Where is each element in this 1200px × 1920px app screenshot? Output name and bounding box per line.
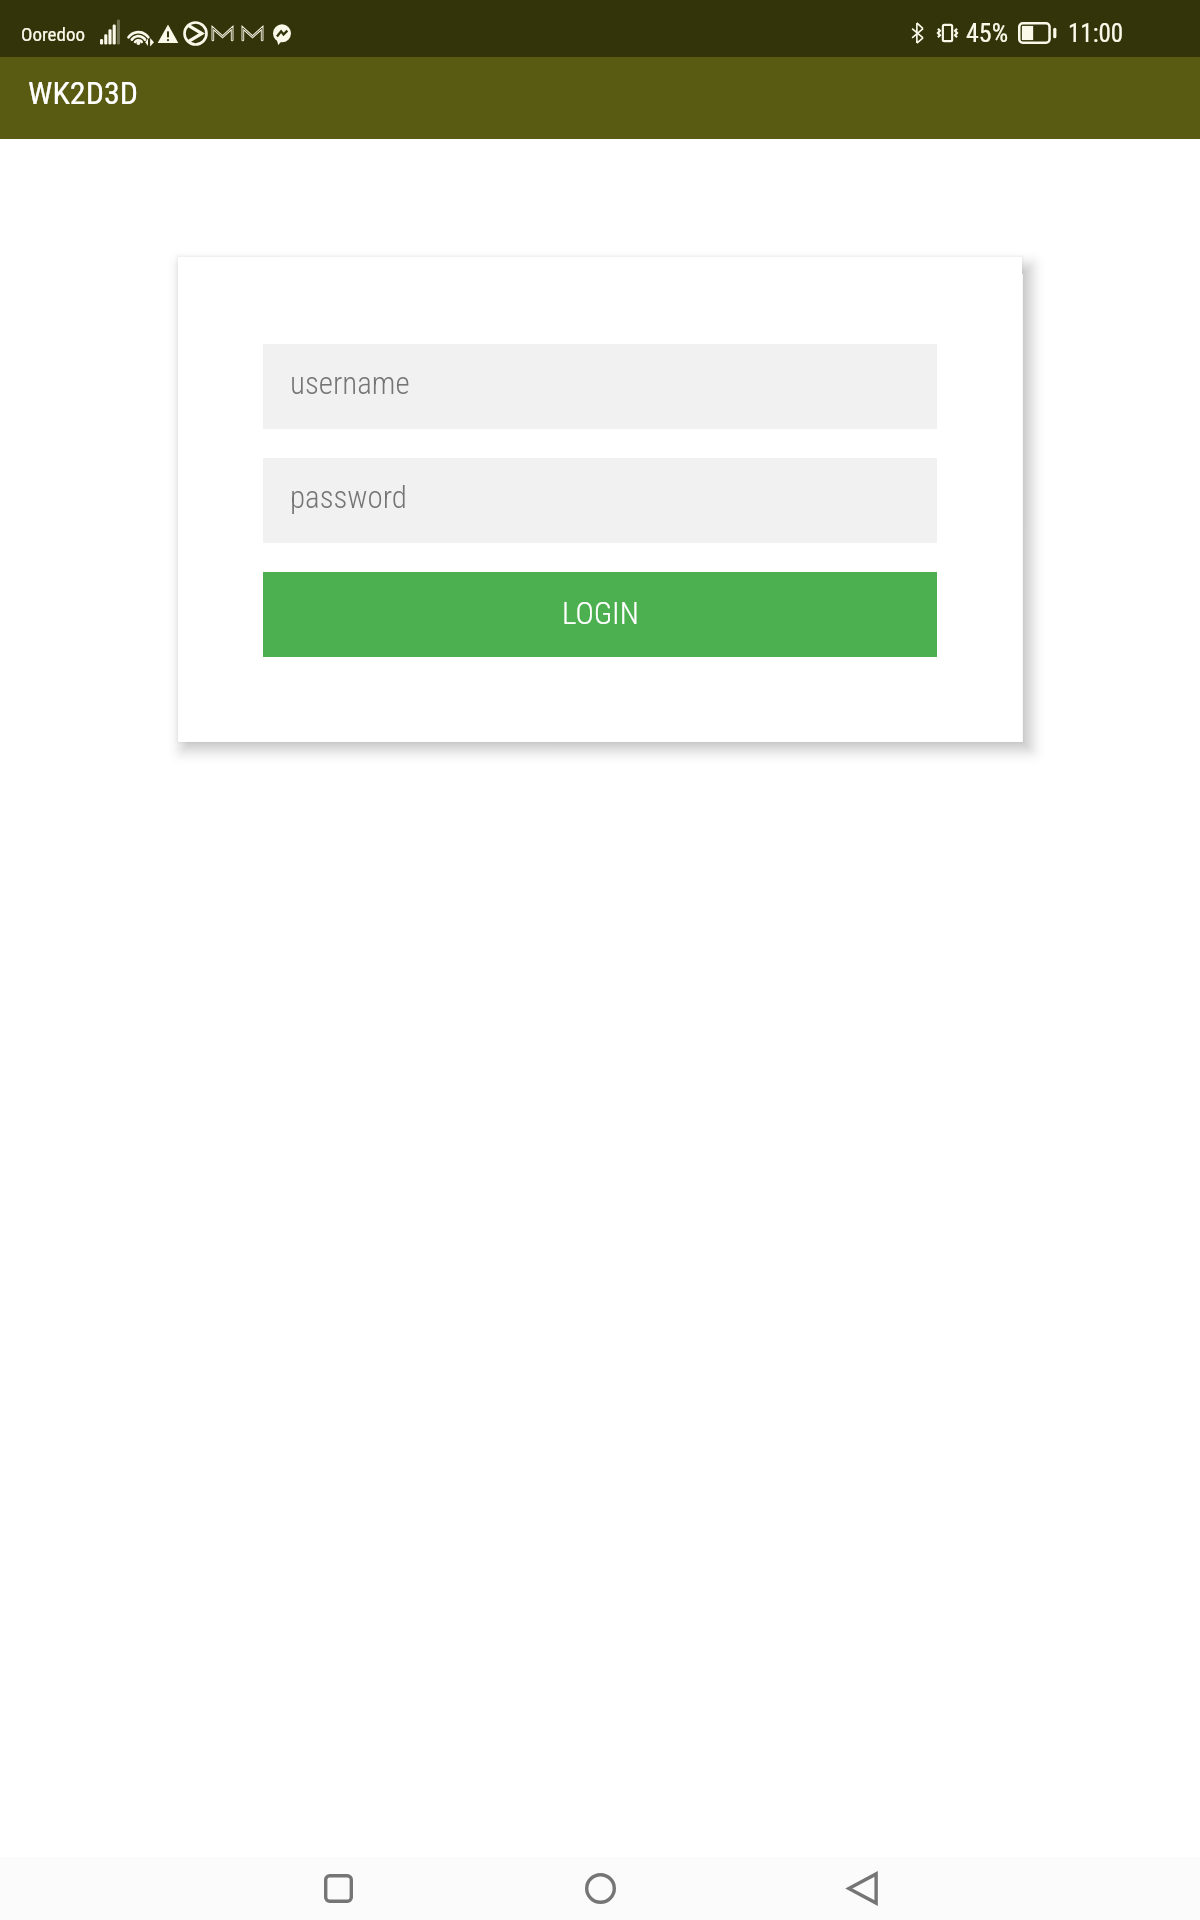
- staticText: WK2D3D: [28, 74, 138, 112]
- staticText: LOGIN: [562, 595, 639, 631]
- button[interactable]: Home: [469, 1857, 731, 1920]
- button[interactable]: LOGIN: [263, 572, 937, 657]
- button[interactable]: Recent apps: [207, 1857, 469, 1920]
- staticText: Ooredoo: [21, 23, 85, 45]
- staticText: 11:00: [1068, 19, 1124, 48]
- button[interactable]: password: [263, 458, 937, 543]
- button[interactable]: Back: [731, 1857, 993, 1920]
- staticText: username: [290, 365, 410, 401]
- staticText: 45%: [966, 18, 1009, 48]
- staticText: password: [290, 479, 407, 515]
- button[interactable]: username: [263, 344, 937, 429]
